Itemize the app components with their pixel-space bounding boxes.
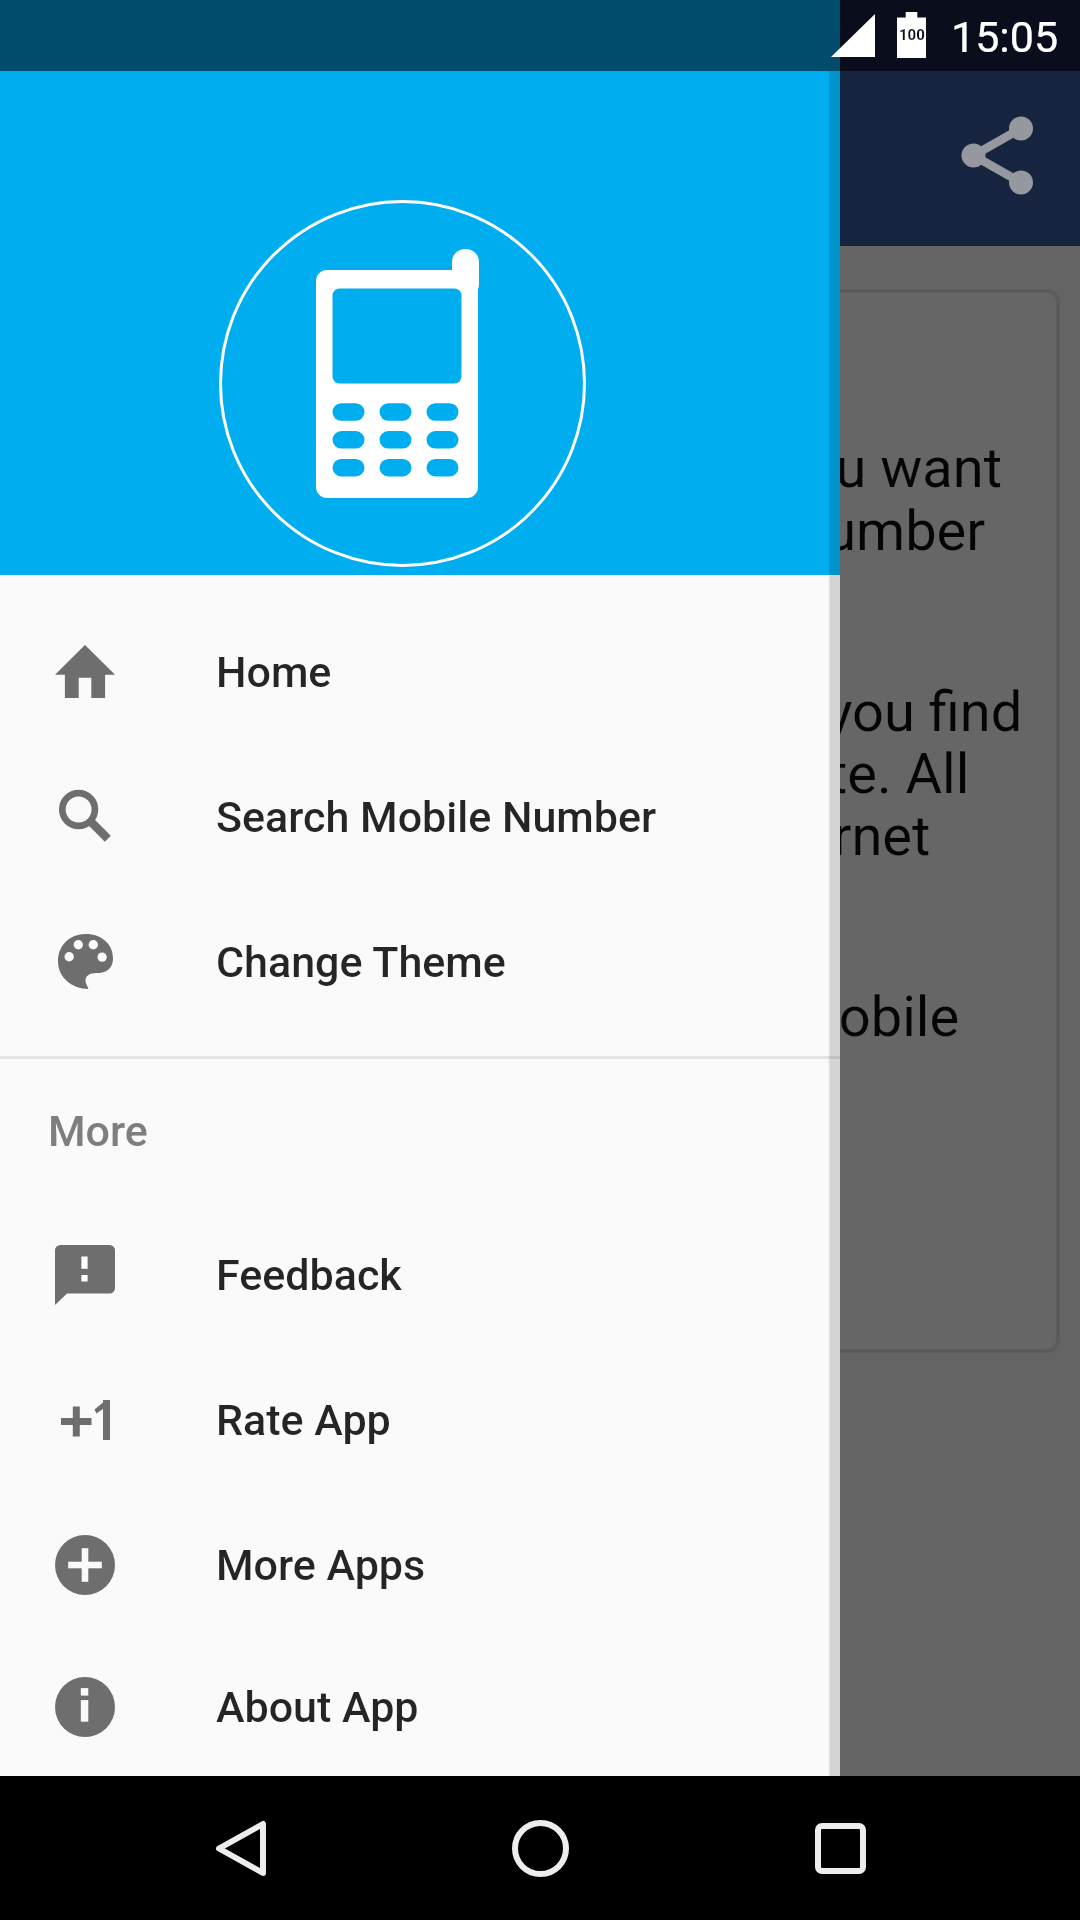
staticText: Search Mobile Number (216, 792, 657, 842)
staticText: Home (216, 647, 332, 697)
button[interactable]: Recents (785, 1793, 895, 1903)
button[interactable]: Home (485, 1793, 595, 1903)
staticText: Mobile Number Tracker, do you want (97, 435, 1002, 501)
staticText: About App (216, 1682, 419, 1732)
button[interactable]: Back (186, 1793, 296, 1903)
staticText: Feedback (216, 1250, 402, 1300)
staticText: to trace any mobile number (306, 498, 986, 564)
staticText: Search any mobile (502, 984, 960, 1050)
button[interactable]: Feedback (0, 1202, 840, 1347)
staticText: 15:05 (951, 12, 1059, 62)
staticText: Rate App (216, 1395, 391, 1445)
button[interactable]: About App (0, 1637, 840, 1776)
button[interactable]: More Apps (0, 1492, 840, 1637)
button[interactable]: Change Theme (0, 889, 840, 1034)
staticText: 100 (899, 26, 925, 44)
staticText: Change Theme (216, 937, 506, 987)
staticText: mobile number state. All (363, 741, 970, 807)
button[interactable]: Search Mobile Number (0, 744, 840, 889)
button[interactable]: Share (938, 96, 1056, 214)
button[interactable]: Rate App (0, 1347, 840, 1492)
staticText: More Apps (216, 1540, 426, 1590)
staticText: without internet (540, 803, 931, 869)
staticText: This application will help you find (200, 679, 1023, 745)
button[interactable]: Home (0, 599, 840, 744)
staticText: More (48, 1106, 148, 1156)
